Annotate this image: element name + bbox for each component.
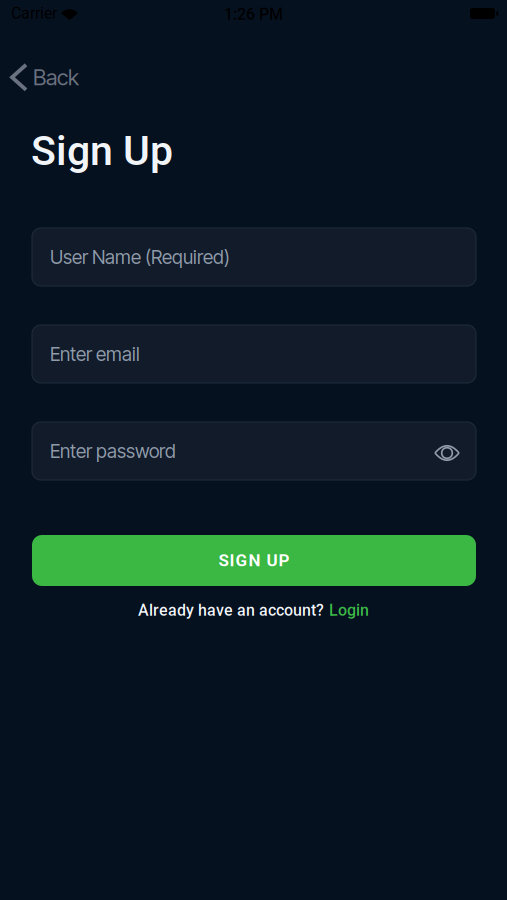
button[interactable]: Login [329, 601, 369, 620]
staticText: Login [329, 601, 369, 620]
staticText: Already have an account? [138, 601, 324, 620]
button[interactable]: SIGN UP [32, 535, 476, 586]
staticText: Carrier [11, 4, 57, 23]
button[interactable]: Show password [435, 443, 459, 459]
staticText: 1:26 PM [224, 5, 283, 24]
staticText: SIGN UP [218, 550, 289, 570]
staticText: Enter email [50, 342, 140, 365]
staticText: Sign Up [31, 127, 173, 175]
staticText: Enter password [50, 439, 176, 462]
button[interactable]: Back [12, 64, 79, 91]
staticText: User Name (Required) [50, 245, 230, 268]
staticText: Back [33, 64, 79, 91]
